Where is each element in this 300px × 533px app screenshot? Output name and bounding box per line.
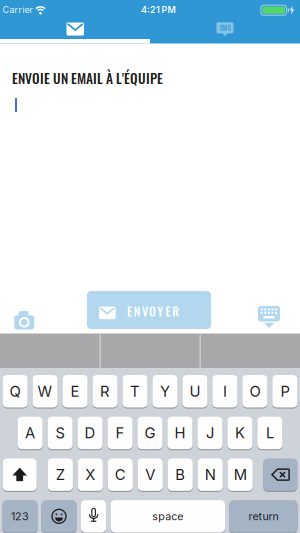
staticText: K bbox=[235, 424, 245, 442]
staticText: E bbox=[127, 302, 132, 320]
button[interactable]: SMS bbox=[150, 0, 300, 43]
button[interactable]: 123 bbox=[2, 500, 37, 533]
staticText: return bbox=[248, 510, 278, 523]
button[interactable]: P bbox=[272, 375, 297, 408]
staticText: 4:21 bbox=[141, 4, 160, 15]
button[interactable]: Dictation bbox=[81, 500, 106, 533]
button[interactable]: B bbox=[168, 458, 193, 492]
staticText: E bbox=[165, 302, 170, 320]
staticText: ENVOIE UN EMAIL À L'ÉQUIPE bbox=[12, 68, 163, 88]
button[interactable]: C bbox=[108, 458, 133, 492]
staticText: Q bbox=[10, 382, 21, 400]
button[interactable]: V bbox=[138, 458, 163, 492]
button[interactable]: Shift bbox=[3, 458, 37, 492]
staticText: O bbox=[149, 302, 156, 320]
button[interactable]: Envoyer bbox=[87, 291, 211, 329]
button[interactable]: Camera bbox=[2, 296, 46, 340]
button[interactable]: O bbox=[242, 375, 267, 408]
staticText: PM bbox=[161, 4, 175, 15]
staticText: L bbox=[266, 424, 274, 442]
staticText: SMS bbox=[219, 23, 230, 33]
staticText: Carrier bbox=[2, 4, 32, 15]
button[interactable]: Email bbox=[0, 0, 150, 43]
staticText: Y bbox=[160, 382, 170, 400]
staticText: Y bbox=[157, 302, 163, 320]
button[interactable]: Dismiss keyboard bbox=[254, 302, 284, 332]
button[interactable]: return bbox=[229, 500, 297, 533]
button[interactable]: I bbox=[212, 375, 237, 408]
button[interactable]: Z bbox=[48, 458, 73, 492]
button[interactable]: G bbox=[137, 417, 163, 450]
button[interactable]: K bbox=[227, 417, 252, 450]
button[interactable]: A bbox=[17, 417, 43, 450]
staticText: B bbox=[175, 466, 185, 484]
button[interactable]: J bbox=[197, 417, 223, 450]
button[interactable]: Q bbox=[2, 375, 28, 408]
button[interactable]: R bbox=[92, 375, 118, 408]
button[interactable]: L bbox=[257, 417, 282, 450]
button[interactable]: U bbox=[182, 375, 208, 408]
staticText: X bbox=[85, 466, 95, 484]
staticText: S bbox=[56, 424, 65, 442]
button[interactable]: F bbox=[107, 417, 133, 450]
staticText: W bbox=[38, 382, 53, 400]
button[interactable]: Emoji bbox=[41, 500, 76, 533]
button[interactable]: N bbox=[198, 458, 223, 492]
staticText: H bbox=[174, 424, 185, 442]
staticText: V bbox=[142, 302, 148, 320]
button[interactable]: space bbox=[110, 500, 225, 533]
staticText: V bbox=[145, 466, 155, 484]
staticText: R bbox=[172, 302, 179, 320]
button[interactable]: S bbox=[47, 417, 73, 450]
button[interactable]: D bbox=[77, 417, 103, 450]
staticText: O bbox=[249, 382, 260, 400]
staticText: A bbox=[25, 424, 35, 442]
staticText: space bbox=[152, 510, 183, 523]
staticText: D bbox=[85, 424, 96, 442]
button[interactable]: M bbox=[228, 458, 253, 492]
staticText: 123 bbox=[11, 510, 29, 523]
staticText: M bbox=[234, 466, 247, 484]
button[interactable]: E bbox=[62, 375, 88, 408]
staticText: E bbox=[70, 382, 79, 400]
staticText: I bbox=[223, 382, 227, 400]
button[interactable]: H bbox=[167, 417, 193, 450]
button[interactable]: Delete bbox=[263, 458, 297, 492]
button[interactable]: X bbox=[78, 458, 103, 492]
staticText: U bbox=[189, 382, 200, 400]
staticText: G bbox=[144, 424, 155, 442]
staticText: Z bbox=[56, 466, 65, 484]
staticText: F bbox=[115, 424, 124, 442]
staticText: R bbox=[100, 382, 110, 400]
button[interactable]: T bbox=[122, 375, 148, 408]
staticText: T bbox=[130, 382, 140, 400]
staticText: J bbox=[206, 424, 214, 442]
button[interactable]: Y bbox=[152, 375, 178, 408]
staticText: C bbox=[115, 466, 126, 484]
staticText: N bbox=[134, 302, 141, 320]
button[interactable]: W bbox=[32, 375, 58, 408]
staticText: P bbox=[280, 382, 289, 400]
staticText: N bbox=[205, 466, 216, 484]
